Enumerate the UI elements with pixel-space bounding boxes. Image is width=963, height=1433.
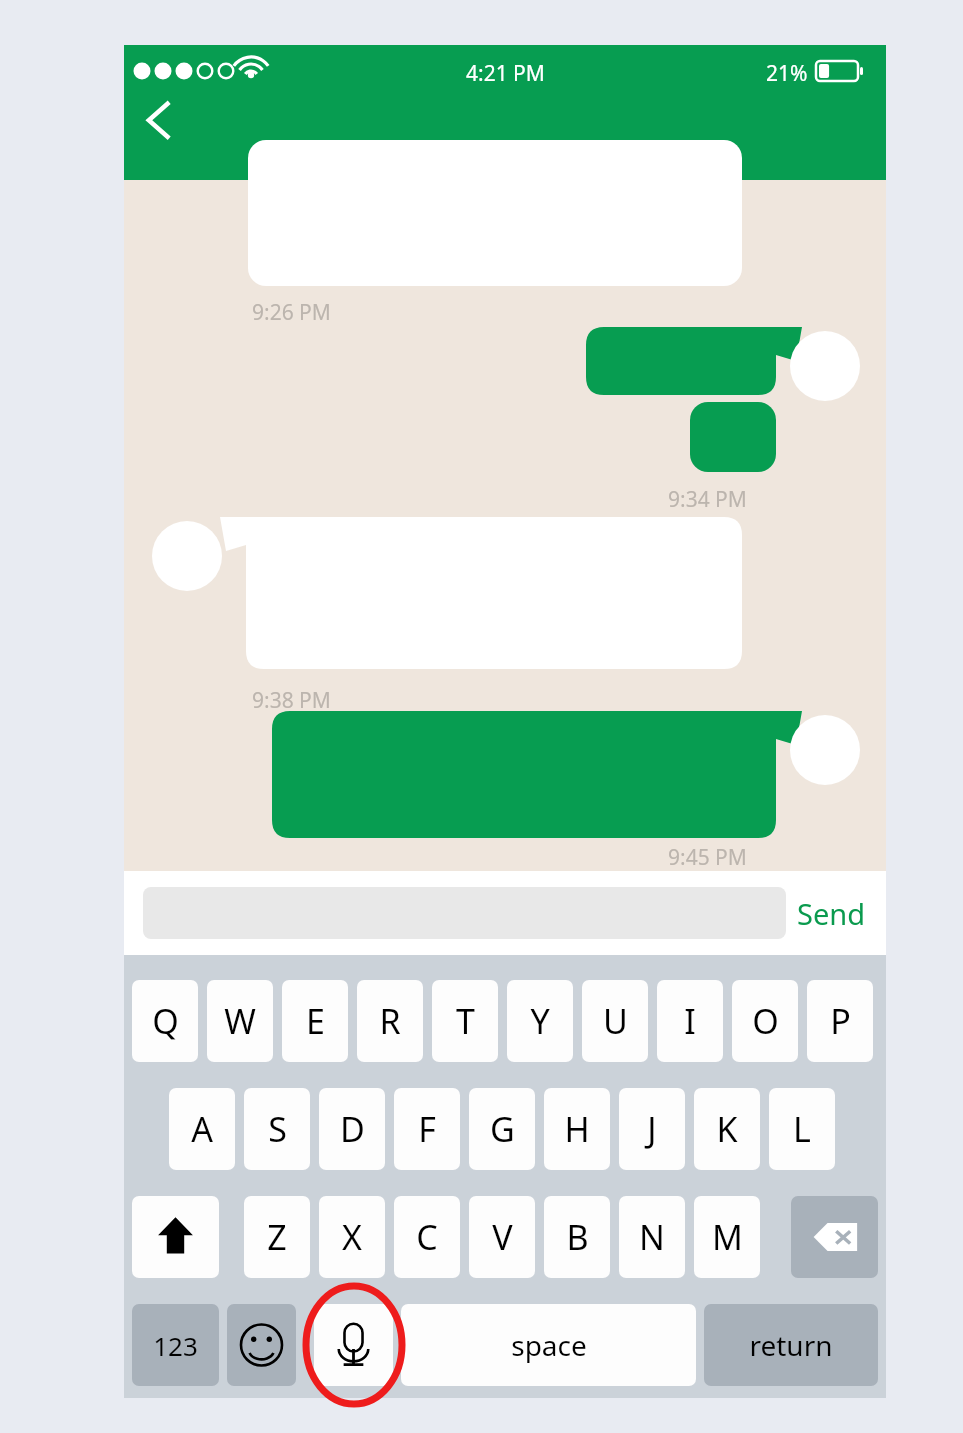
staticText: E xyxy=(306,998,325,1044)
button[interactable]: Shift xyxy=(132,1196,219,1278)
staticText: I xyxy=(684,998,696,1044)
staticText: D xyxy=(340,1106,365,1152)
staticText: 9:38 PM xyxy=(252,686,331,715)
staticText: 123 xyxy=(153,1328,198,1363)
button[interactable]: Send xyxy=(789,884,874,943)
button[interactable]: A xyxy=(169,1088,235,1170)
button[interactable]: M xyxy=(694,1196,760,1278)
button[interactable]: J xyxy=(619,1088,685,1170)
button[interactable]: Q xyxy=(132,980,198,1062)
staticText: H xyxy=(564,1106,590,1152)
button[interactable]: Dictation xyxy=(314,1304,393,1386)
button[interactable]: Z xyxy=(244,1196,310,1278)
button[interactable]: Back xyxy=(132,89,192,149)
button[interactable]: space xyxy=(401,1304,696,1386)
staticText: space xyxy=(511,1326,587,1364)
staticText: return xyxy=(749,1326,833,1364)
button[interactable]: O xyxy=(732,980,798,1062)
button[interactable]: I xyxy=(657,980,723,1062)
staticText: S xyxy=(268,1106,287,1152)
staticText: U xyxy=(603,998,628,1044)
button[interactable]: Y xyxy=(507,980,573,1062)
button[interactable]: C xyxy=(394,1196,460,1278)
staticText: 21% xyxy=(766,59,808,88)
button[interactable]: H xyxy=(544,1088,610,1170)
staticText: V xyxy=(492,1214,513,1260)
staticText: Send xyxy=(797,894,866,933)
button[interactable]: Emoji xyxy=(227,1304,296,1386)
button[interactable]: R xyxy=(357,980,423,1062)
staticText: 9:34 PM xyxy=(668,485,747,514)
staticText: L xyxy=(793,1106,811,1152)
staticText: B xyxy=(566,1214,589,1260)
button[interactable]: E xyxy=(282,980,348,1062)
button[interactable]: G xyxy=(469,1088,535,1170)
button[interactable]: K xyxy=(694,1088,760,1170)
staticText: O xyxy=(752,998,779,1044)
staticText: X xyxy=(342,1214,362,1260)
button[interactable]: return xyxy=(704,1304,878,1386)
staticText: W xyxy=(224,998,256,1044)
staticText: G xyxy=(490,1106,515,1152)
button[interactable]: B xyxy=(544,1196,610,1278)
staticText: Y xyxy=(530,998,550,1044)
staticText: F xyxy=(418,1106,436,1152)
staticText: 4:21 PM xyxy=(466,59,545,88)
staticText: M xyxy=(712,1214,743,1260)
staticText: R xyxy=(379,998,401,1044)
button[interactable]: U xyxy=(582,980,648,1062)
staticText: 9:45 PM xyxy=(668,843,747,872)
staticText: P xyxy=(830,998,851,1044)
staticText: T xyxy=(456,998,475,1044)
button[interactable]: F xyxy=(394,1088,460,1170)
staticText: A xyxy=(191,1106,213,1152)
button[interactable]: S xyxy=(244,1088,310,1170)
button[interactable]: X xyxy=(319,1196,385,1278)
button[interactable]: Backspace xyxy=(791,1196,878,1278)
staticText: 9:26 PM xyxy=(252,298,331,327)
button[interactable]: 123 xyxy=(132,1304,219,1386)
staticText: Z xyxy=(267,1214,287,1260)
button[interactable]: L xyxy=(769,1088,835,1170)
button[interactable]: N xyxy=(619,1196,685,1278)
button[interactable]: W xyxy=(207,980,273,1062)
staticText: N xyxy=(639,1214,665,1260)
button[interactable]: P xyxy=(807,980,873,1062)
staticText: Q xyxy=(152,998,179,1044)
staticText: K xyxy=(716,1106,738,1152)
button[interactable]: D xyxy=(319,1088,385,1170)
button[interactable]: V xyxy=(469,1196,535,1278)
staticText: J xyxy=(647,1106,657,1152)
button[interactable]: T xyxy=(432,980,498,1062)
staticText: C xyxy=(416,1214,438,1260)
